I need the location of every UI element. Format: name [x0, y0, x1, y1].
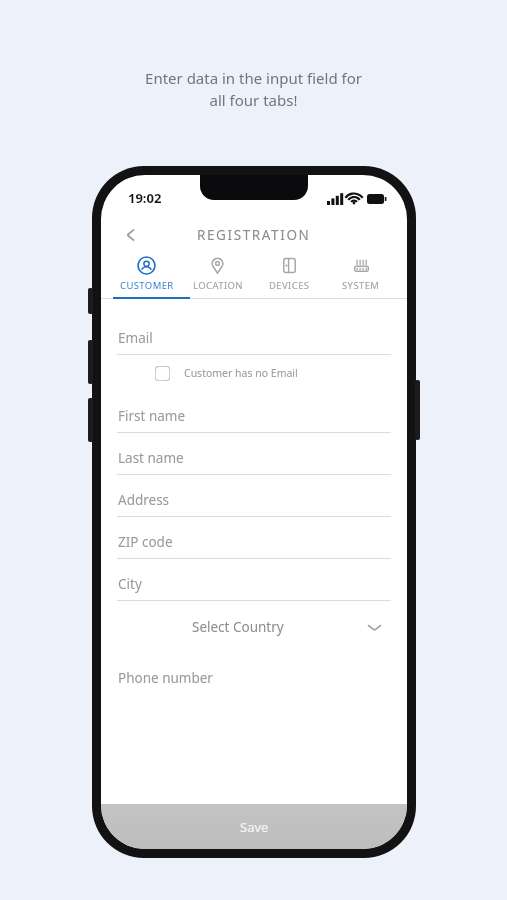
staticText: Last name: [118, 449, 184, 467]
button[interactable]: CUSTOMER: [111, 253, 182, 297]
staticText: Select Country: [192, 618, 284, 636]
staticText: LOCATION: [193, 279, 243, 292]
staticText: Customer has no Email: [184, 366, 298, 380]
staticText: SYSTEM: [342, 279, 380, 292]
button[interactable]: Back: [113, 217, 149, 253]
button[interactable]: Select Country: [101, 601, 407, 653]
staticText: DEVICES: [269, 279, 310, 292]
button[interactable]: DEVICES: [253, 253, 325, 297]
staticText: Phone number: [118, 669, 213, 687]
staticText: First name: [118, 407, 186, 425]
button[interactable]: Email: [101, 313, 407, 355]
button[interactable]: City: [101, 559, 407, 601]
staticText: 19:02: [128, 189, 162, 207]
button[interactable]: Phone number: [101, 653, 407, 694]
button[interactable]: ZIP code: [101, 517, 407, 559]
button[interactable]: First name: [101, 391, 407, 433]
staticText: Save: [240, 818, 269, 836]
staticText: Email: [118, 329, 153, 347]
staticText: CUSTOMER: [120, 279, 174, 292]
staticText: REGISTRATION: [197, 226, 311, 244]
button[interactable]: Last name: [101, 433, 407, 475]
button[interactable]: LOCATION: [182, 253, 253, 297]
button[interactable]: Customer has no Email: [155, 355, 407, 391]
button[interactable]: Address: [101, 475, 407, 517]
staticText: Address: [118, 491, 170, 509]
staticText: City: [118, 575, 142, 593]
staticText: ZIP code: [118, 533, 173, 551]
button[interactable]: SYSTEM: [325, 253, 397, 297]
staticText: Enter data in the input field for all fo…: [0, 68, 507, 111]
button[interactable]: Save: [101, 804, 407, 849]
